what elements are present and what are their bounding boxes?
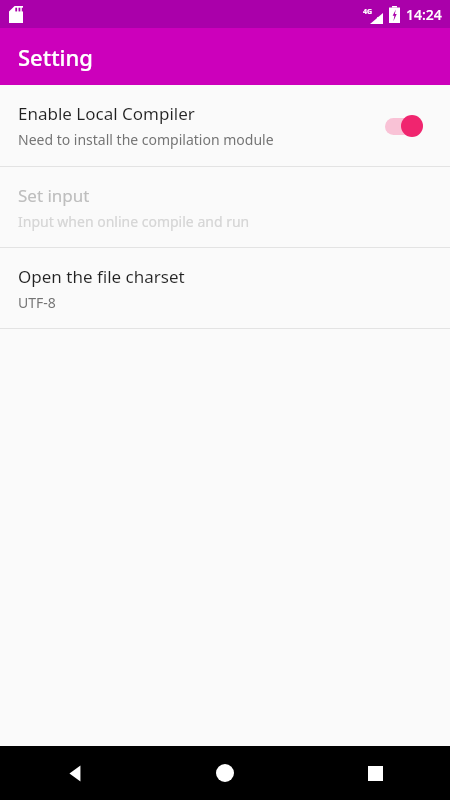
staticText: UTF-8 (18, 293, 56, 312)
staticText: 14:24 (406, 5, 442, 24)
staticText: Set input (18, 184, 90, 207)
button[interactable]: Set input (0, 167, 450, 247)
staticText: Input when online compile and run (18, 212, 250, 231)
button[interactable]: Back (0, 746, 150, 800)
button[interactable]: Open the file charset (0, 248, 450, 328)
button[interactable]: Recent apps (300, 746, 450, 800)
button[interactable]: Home (150, 746, 300, 800)
button[interactable]: Enable Local Compiler (380, 110, 432, 142)
staticText: x (377, 14, 382, 24)
staticText: 4G (363, 7, 373, 17)
button[interactable]: Enable Local Compiler (0, 85, 450, 166)
staticText: Setting (18, 42, 93, 72)
staticText: Need to install the compilation module (18, 130, 274, 149)
staticText: Enable Local Compiler (18, 102, 195, 125)
staticText: Open the file charset (18, 265, 185, 288)
